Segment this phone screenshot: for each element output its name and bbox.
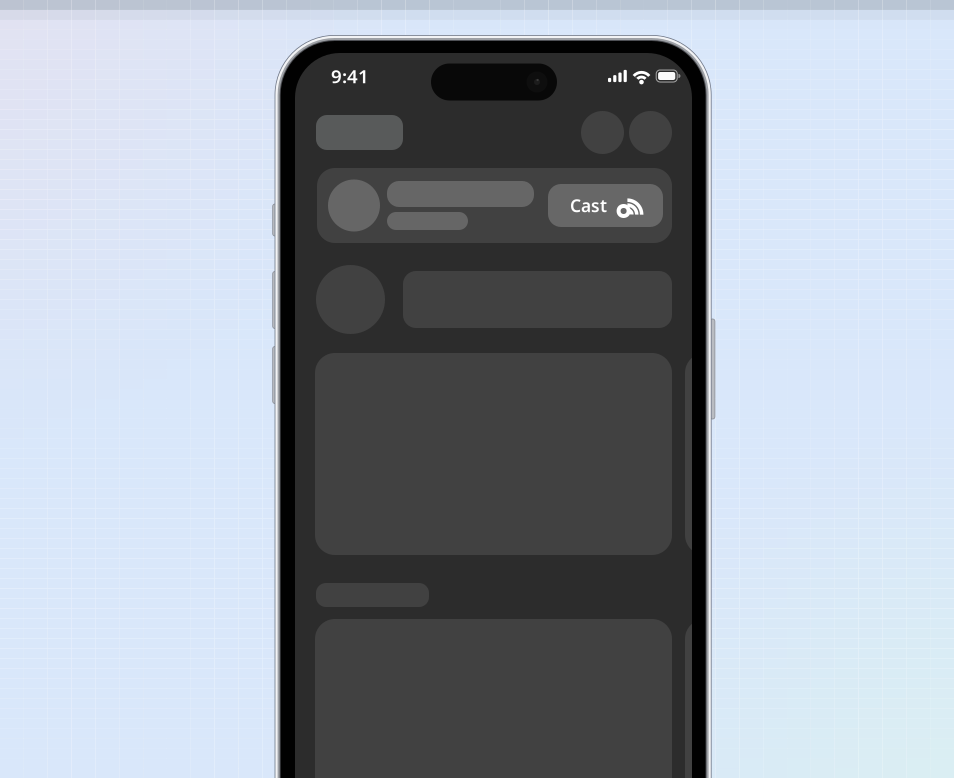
button[interactable]: Loading item: [685, 353, 954, 555]
button[interactable]: Profile: [629, 111, 672, 154]
button[interactable]: Search: [581, 111, 624, 154]
staticText: Cast: [570, 194, 607, 217]
button[interactable]: Cast: [548, 184, 663, 227]
button[interactable]: Loading row: [295, 265, 692, 334]
button[interactable]: Loading item: [685, 619, 954, 778]
button[interactable]: Title: [316, 115, 403, 150]
staticText: 9:41: [331, 64, 369, 88]
